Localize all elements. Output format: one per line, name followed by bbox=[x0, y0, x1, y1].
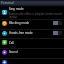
staticText: Easy mode bbox=[9, 7, 24, 11]
button[interactable] bbox=[0, 48, 64, 58]
staticText: Sound bbox=[9, 50, 18, 54]
button[interactable]: Toggle bbox=[53, 21, 62, 25]
button[interactable] bbox=[0, 19, 64, 29]
button[interactable]: Toggle bbox=[53, 31, 62, 35]
staticText: Call bbox=[9, 41, 14, 45]
staticText: Blocking mode bbox=[9, 21, 30, 25]
staticText: Easy mode offers a simpler home screen l… bbox=[9, 12, 63, 19]
staticText: Hands-free mode bbox=[9, 31, 33, 35]
staticText: Personal bbox=[1, 1, 14, 5]
button[interactable] bbox=[0, 38, 64, 48]
button[interactable] bbox=[0, 29, 64, 39]
button[interactable] bbox=[0, 58, 64, 64]
button[interactable] bbox=[0, 7, 64, 19]
